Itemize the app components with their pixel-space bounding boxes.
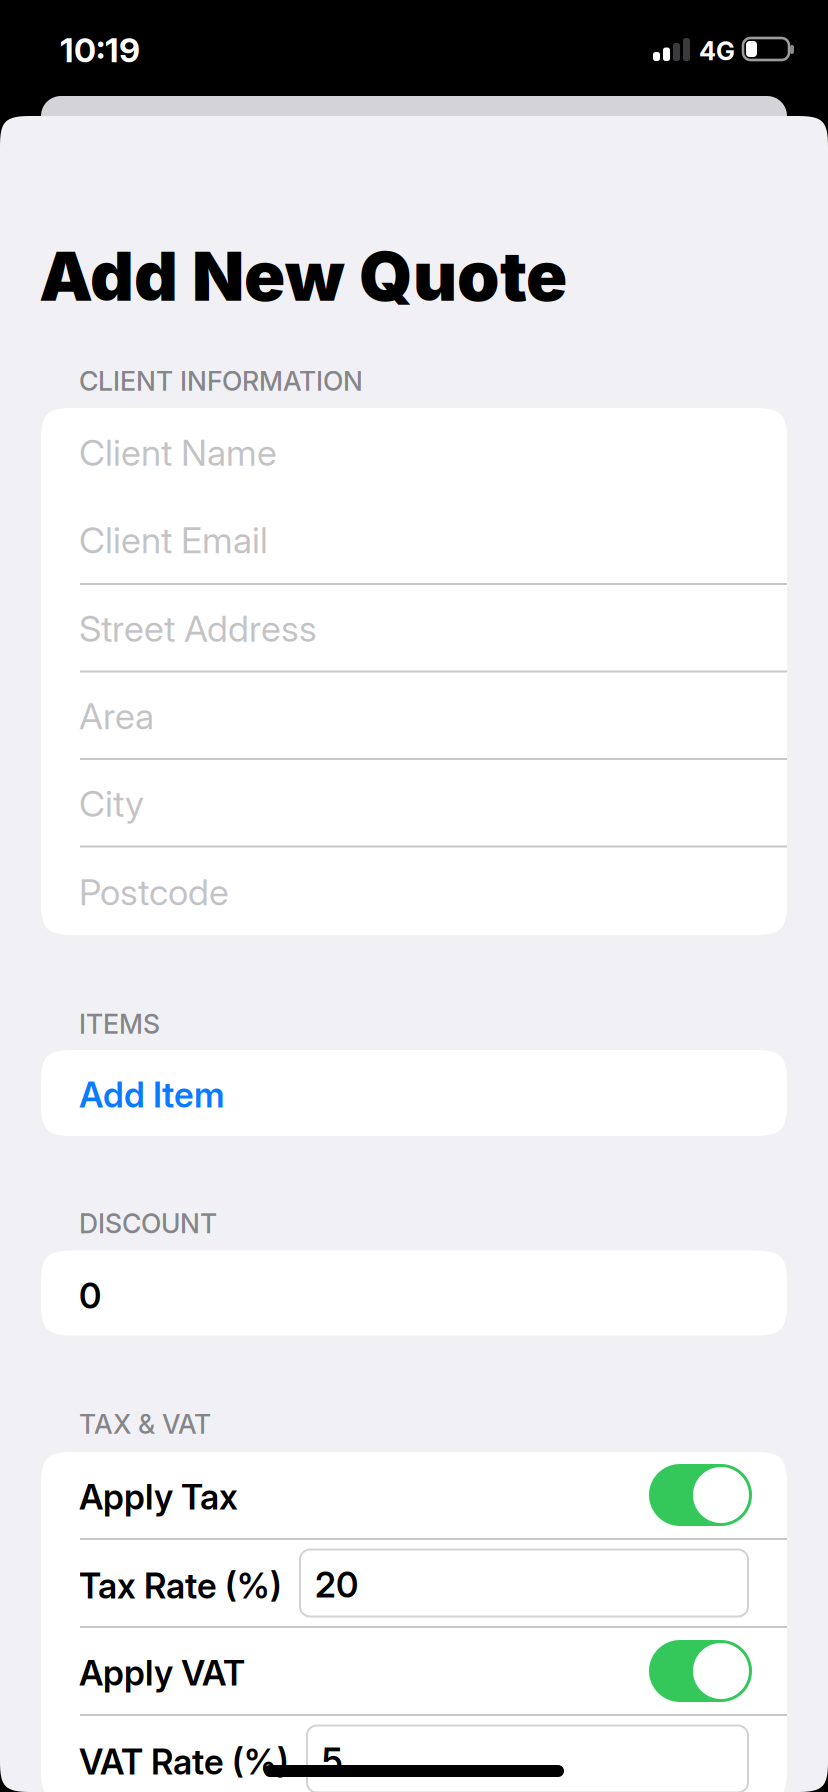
staticText: Street Address (79, 607, 317, 651)
staticText: Add New Quote (39, 235, 567, 317)
button[interactable]: Add Item (41, 1050, 787, 1136)
staticText: ITEMS (79, 1008, 160, 1040)
staticText: Client Name (79, 431, 277, 475)
staticText: VAT Rate (%) (79, 1741, 289, 1783)
staticText: Tax Rate (%) (79, 1565, 282, 1607)
staticText: 5 (322, 1740, 343, 1782)
button[interactable]: 20 (300, 1549, 748, 1616)
staticText: 4G (699, 36, 735, 66)
staticText: 20 (315, 1564, 358, 1606)
button[interactable]: Apply VAT (41, 1628, 787, 1714)
staticText: CLIENT INFORMATION (79, 365, 363, 397)
button[interactable]: Apply Tax (41, 1452, 787, 1538)
staticText: 0 (79, 1275, 101, 1317)
staticText: TAX & VAT (79, 1408, 211, 1440)
staticText: Area (79, 694, 154, 738)
staticText: Client Email (79, 518, 268, 562)
staticText: Postcode (79, 870, 229, 914)
staticText: City (79, 782, 144, 826)
staticText: Apply Tax (79, 1476, 238, 1518)
staticText: Apply VAT (79, 1652, 245, 1694)
staticText: 10:19 (60, 30, 140, 70)
staticText: DISCOUNT (79, 1207, 217, 1240)
staticText: Add Item (79, 1074, 224, 1116)
button[interactable]: 5 (307, 1725, 748, 1792)
